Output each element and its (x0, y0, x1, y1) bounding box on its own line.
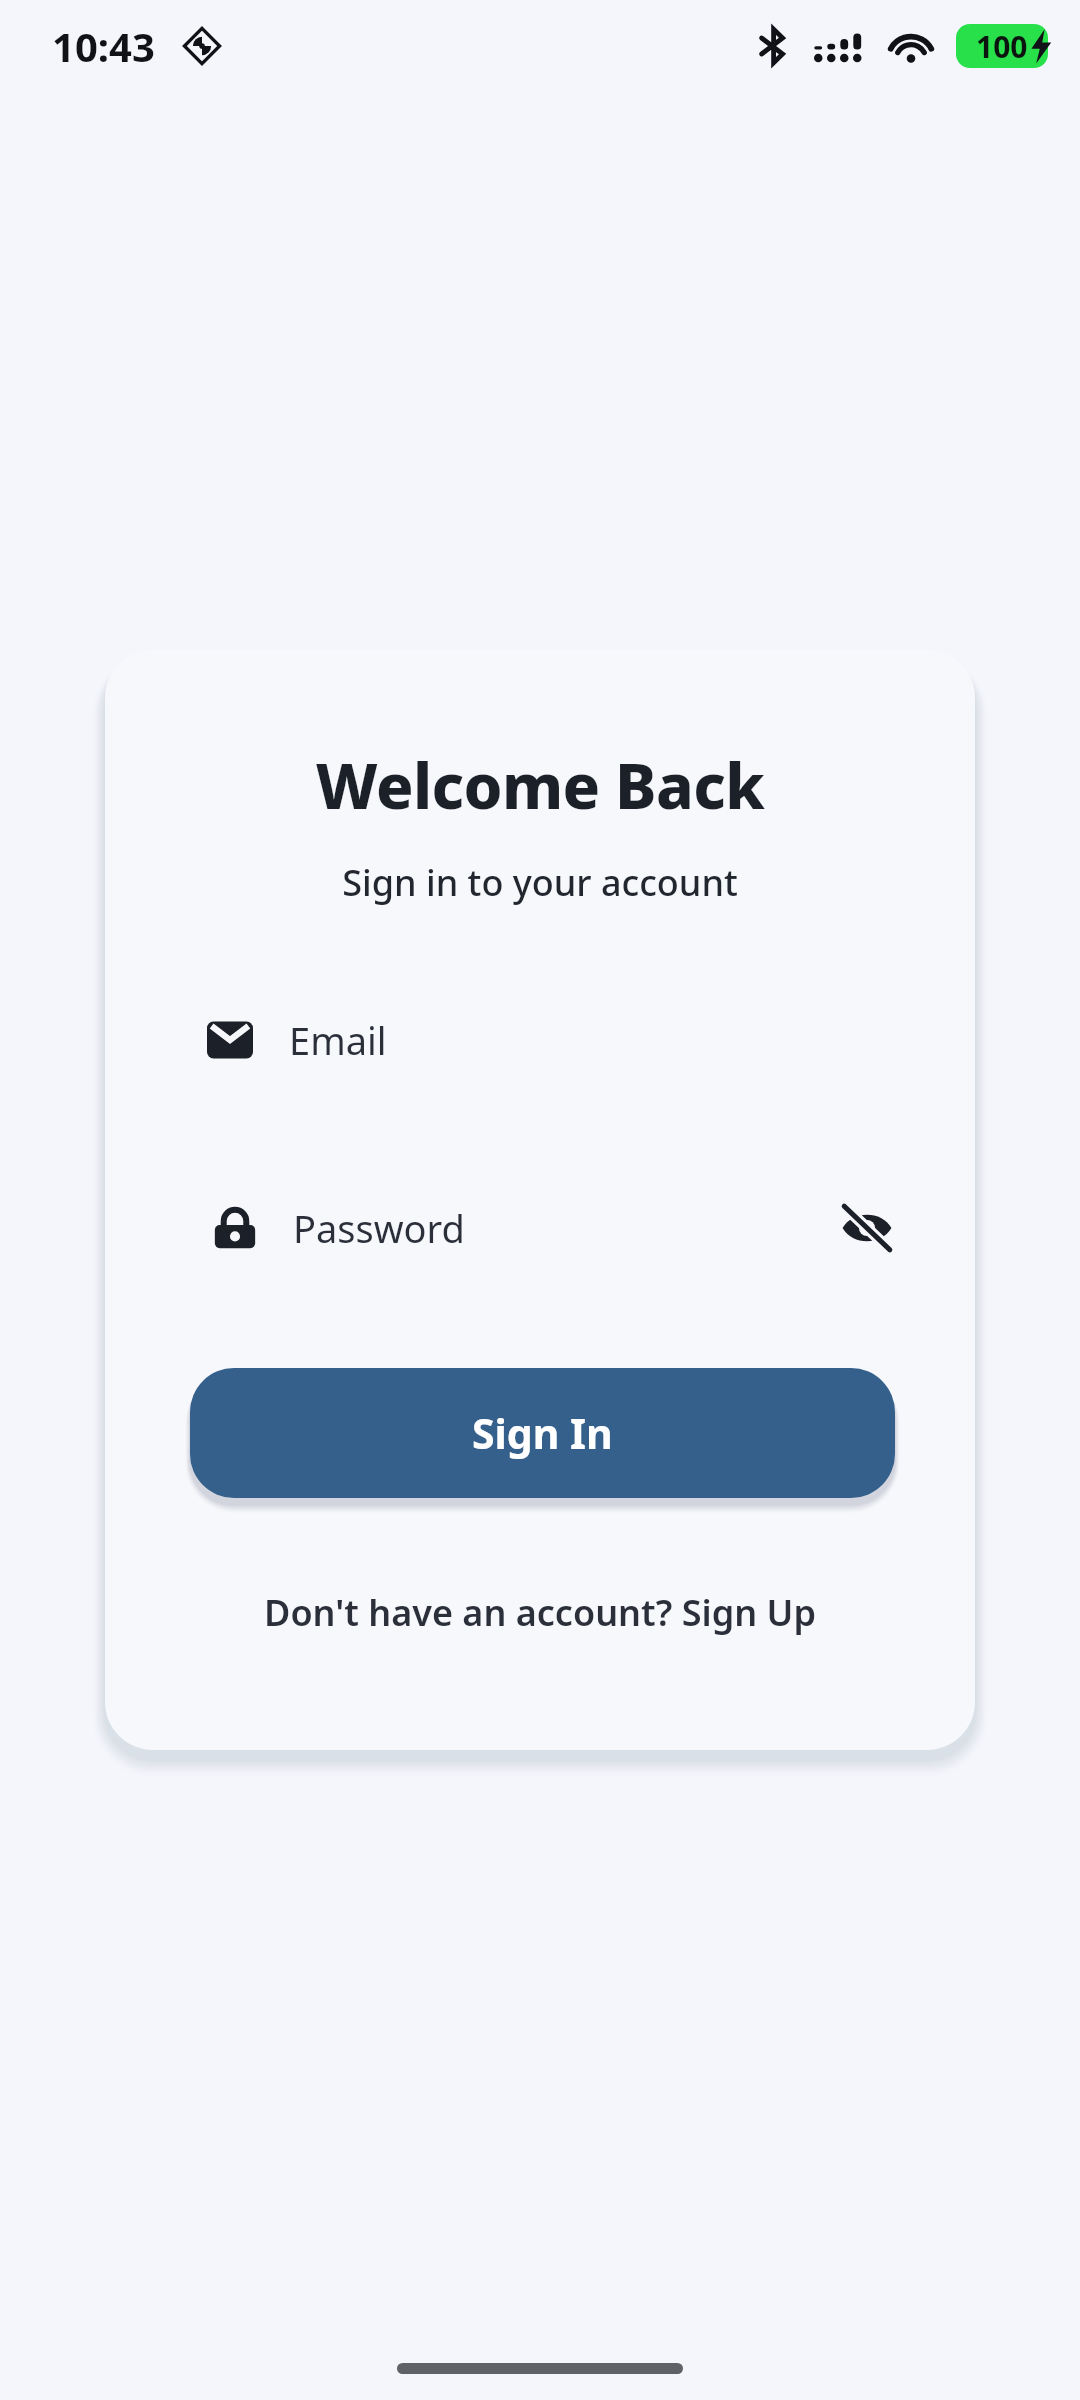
button[interactable]: Sign In (190, 1368, 895, 1498)
staticText: 10:43 (52, 19, 155, 73)
staticText: Password (293, 1202, 465, 1254)
staticText: Email (289, 1014, 387, 1066)
button[interactable]: Show password (825, 1186, 909, 1270)
button[interactable]: Email (105, 990, 975, 1090)
button[interactable]: Don't have an account? Sign Up (105, 1572, 975, 1652)
staticText: Sign In (472, 1405, 613, 1461)
staticText: Welcome Back (105, 743, 975, 827)
staticText: Sign in to your account (105, 858, 975, 907)
staticText: Don't have an account? Sign Up (264, 1588, 816, 1637)
button[interactable]: Password (105, 1178, 975, 1278)
staticText: 100 (976, 26, 1028, 67)
